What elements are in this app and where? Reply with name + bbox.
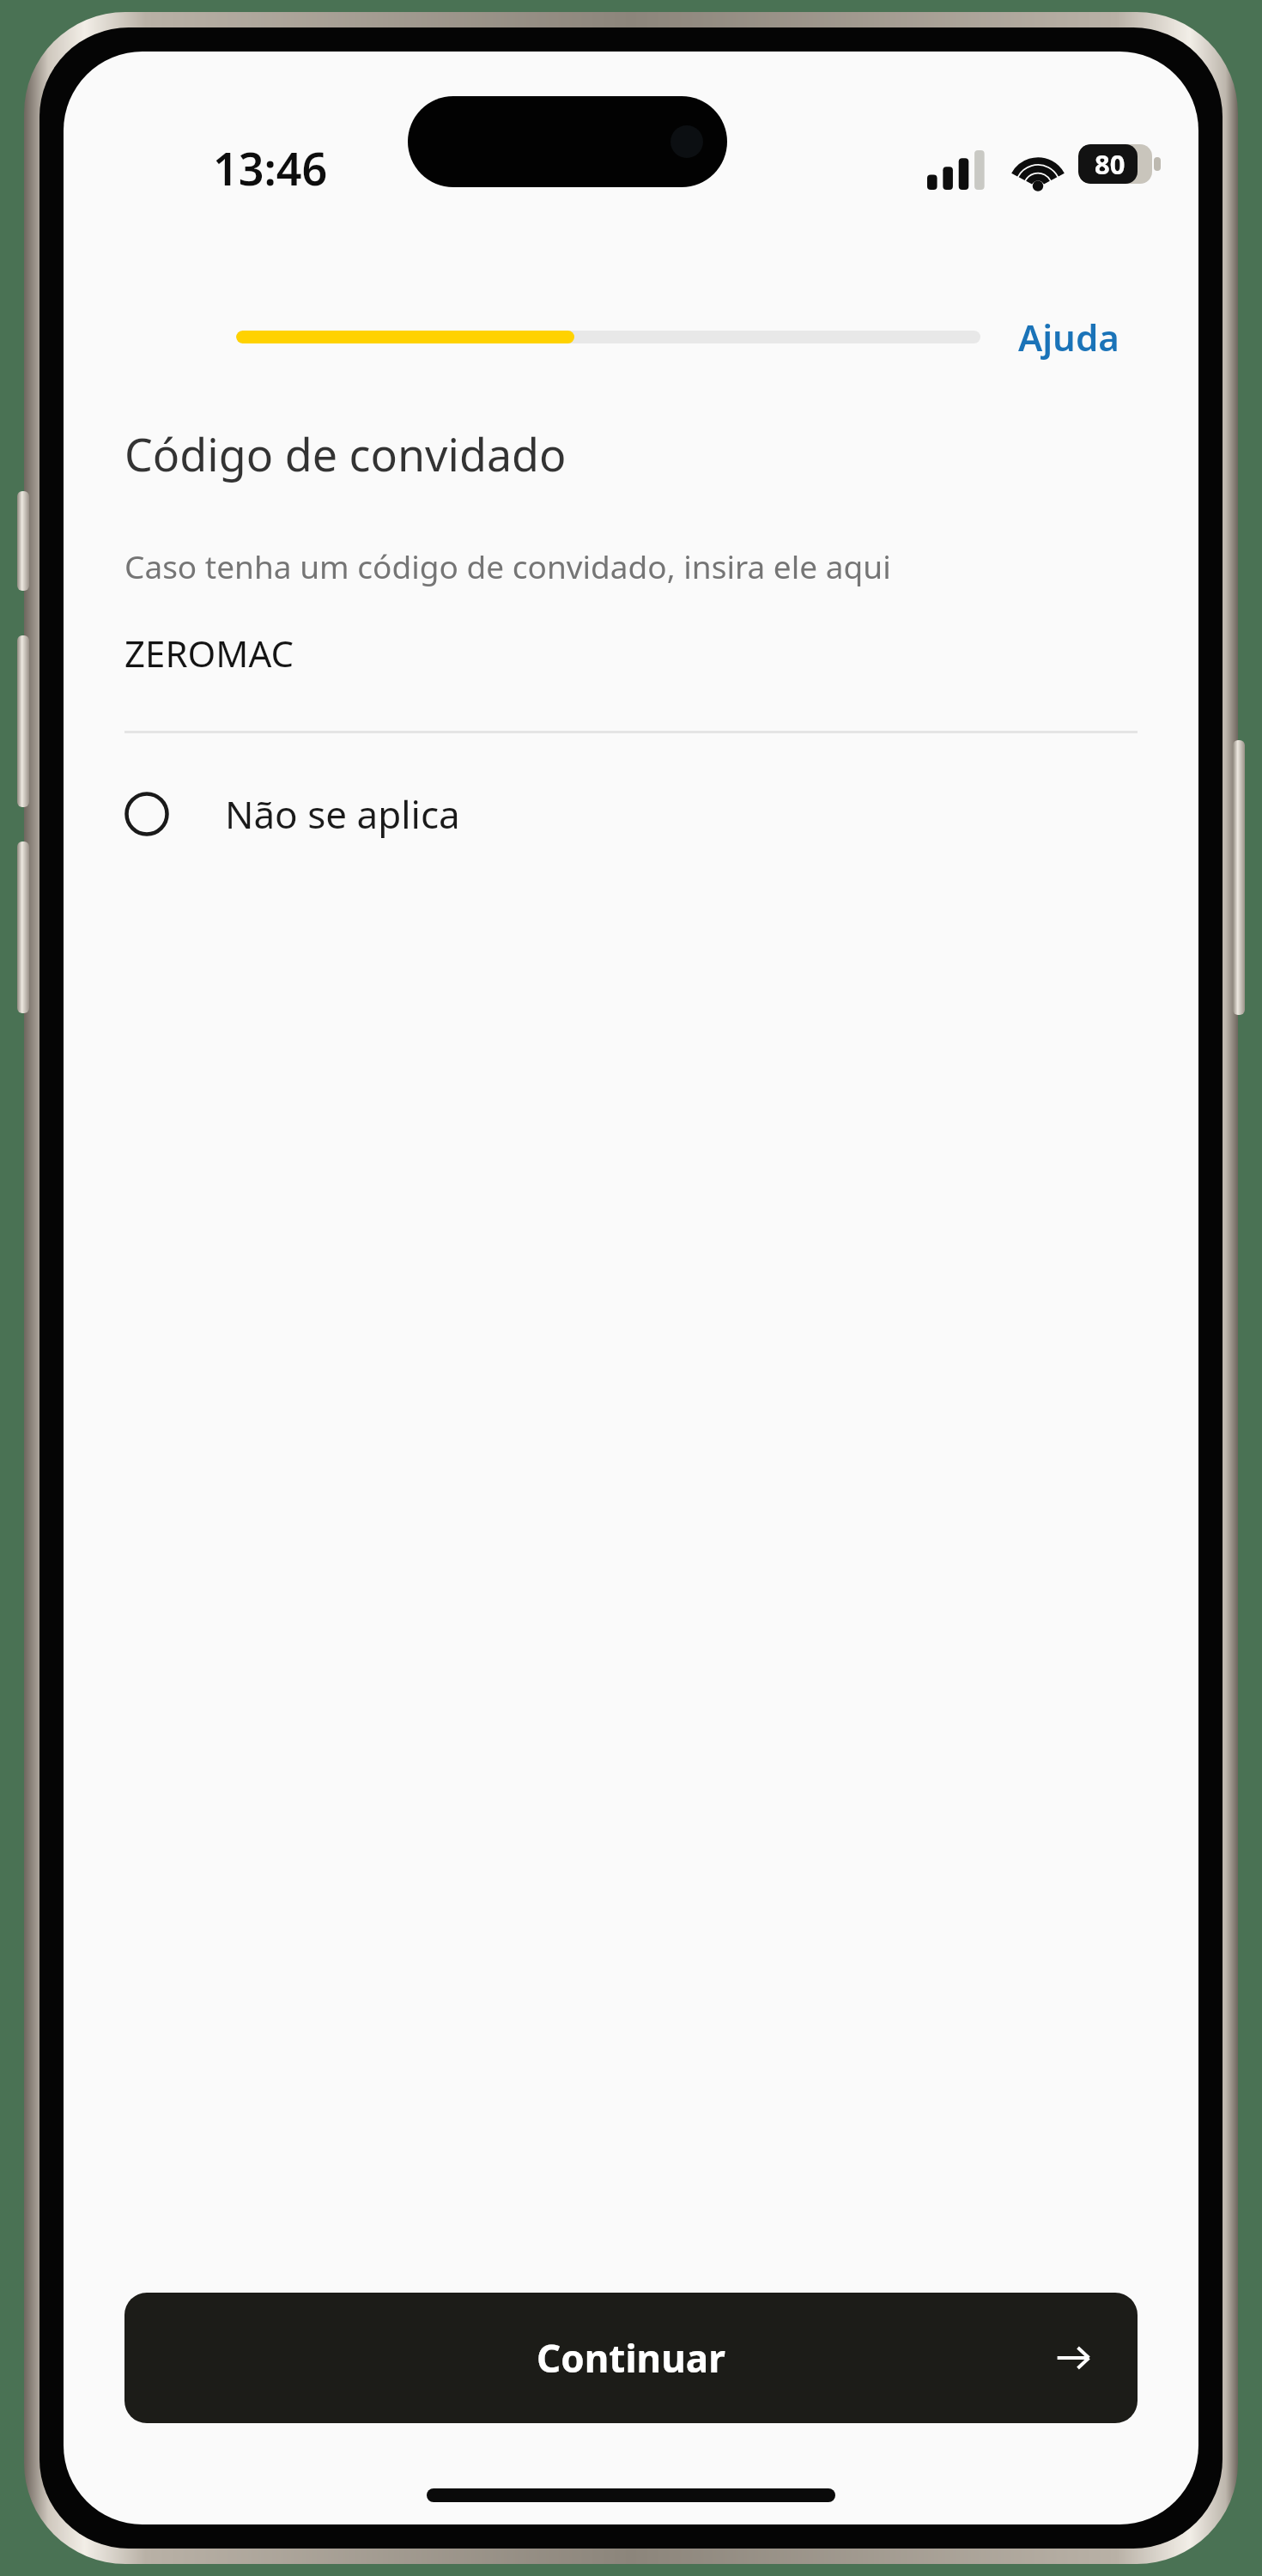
button[interactable]: Continuar — [124, 2293, 1138, 2423]
button[interactable]: ZEROMAC — [64, 629, 1198, 677]
staticText: Caso tenha um código de convidado, insir… — [124, 544, 891, 587]
staticText: Não se aplica — [225, 788, 460, 840]
staticText: Ajuda — [1018, 313, 1119, 361]
staticText: 80 — [1095, 146, 1125, 182]
staticText: 13:46 — [213, 137, 328, 198]
button[interactable]: Não se aplica — [64, 775, 1198, 854]
staticText: Código de convidado — [124, 423, 567, 484]
button[interactable]: Ajuda — [1010, 301, 1128, 374]
staticText: Continuar — [537, 2332, 725, 2384]
staticText: ZEROMAC — [124, 629, 294, 677]
